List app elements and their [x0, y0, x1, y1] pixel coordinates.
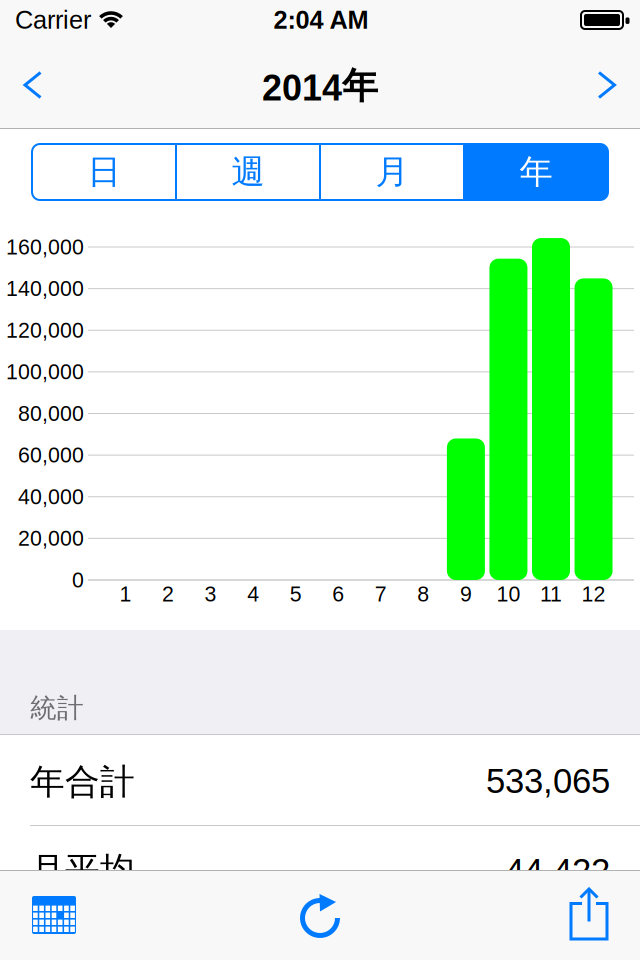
- staticText: 12: [581, 582, 605, 606]
- staticText: 2:04 AM: [273, 6, 368, 34]
- staticText: 年合計: [30, 760, 135, 804]
- staticText: 9: [460, 582, 472, 606]
- staticText: 5: [290, 582, 302, 606]
- staticText: 140,000: [6, 277, 84, 300]
- staticText: 4: [247, 582, 259, 606]
- staticText: 80,000: [18, 402, 84, 425]
- staticText: 10: [496, 582, 520, 606]
- staticText: 100,000: [6, 360, 84, 384]
- staticText: 11: [540, 582, 562, 606]
- staticText: 8: [417, 582, 429, 606]
- staticText: 統計: [30, 691, 84, 725]
- staticText: 3: [205, 582, 217, 606]
- staticText: 40,000: [18, 485, 84, 509]
- staticText: 6: [332, 582, 344, 606]
- staticText: 7: [375, 582, 387, 606]
- staticText: 533,065: [486, 762, 610, 800]
- staticText: 2014年: [262, 63, 378, 109]
- staticText: 0: [72, 568, 84, 592]
- staticText: 2: [162, 582, 174, 606]
- staticText: 44,422: [505, 852, 610, 890]
- staticText: 週: [231, 151, 264, 193]
- staticText: 60,000: [18, 443, 84, 467]
- staticText: 160,000: [6, 235, 84, 259]
- staticText: 日: [87, 151, 120, 193]
- staticText: 20,000: [18, 526, 84, 550]
- staticText: Carrier: [15, 6, 91, 34]
- staticText: 年: [519, 151, 552, 193]
- staticText: 月: [375, 151, 408, 193]
- staticText: 1: [119, 582, 131, 606]
- staticText: 120,000: [6, 318, 84, 342]
- staticText: 月平均: [30, 848, 135, 892]
